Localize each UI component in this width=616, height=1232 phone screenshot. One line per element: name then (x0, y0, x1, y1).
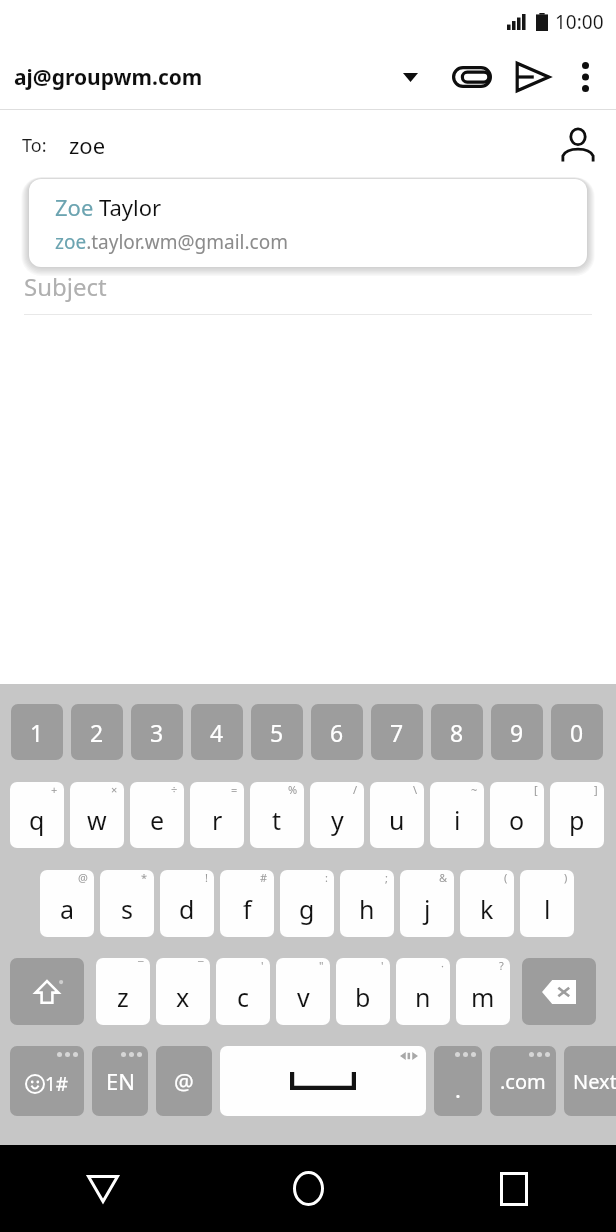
button[interactable]: : (280, 870, 334, 937)
button[interactable]: \ (370, 782, 424, 848)
staticText: * (141, 870, 148, 885)
staticText: ( (504, 870, 508, 885)
button[interactable]: & (400, 870, 454, 937)
button[interactable]: Zoe Taylor (29, 179, 587, 267)
staticText: x (176, 980, 190, 1014)
button[interactable]: * (100, 870, 154, 937)
staticText: @ (78, 870, 88, 885)
staticText: ~ (471, 782, 478, 797)
button[interactable]: / (310, 782, 364, 848)
button[interactable]: ' (336, 958, 390, 1025)
button[interactable]: = (190, 782, 244, 848)
button[interactable]: Back (0, 1145, 206, 1232)
button[interactable]: . (434, 1046, 482, 1116)
staticText: 9 (510, 717, 524, 748)
button[interactable]: Space (220, 1046, 426, 1116)
staticText: ¯ (198, 958, 204, 973)
button[interactable]: ÷ (130, 782, 184, 848)
button[interactable]: ! (160, 870, 214, 937)
staticText: 5 (270, 717, 284, 748)
button[interactable]: · (396, 958, 450, 1025)
button[interactable]: Shift (10, 958, 84, 1025)
button[interactable]: [ (490, 782, 544, 848)
button[interactable]: 2 (71, 704, 123, 760)
button[interactable]: 3 (131, 704, 183, 760)
staticText: Subject (24, 270, 107, 303)
staticText: : (325, 870, 328, 885)
button[interactable]: Attach (448, 53, 496, 101)
button[interactable]: Send (508, 52, 558, 102)
button[interactable]: ' (216, 958, 270, 1025)
button[interactable]: % (250, 782, 304, 848)
button[interactable]: ? (456, 958, 510, 1025)
button[interactable]: 9 (491, 704, 543, 760)
staticText: d (179, 892, 195, 926)
staticText: 0 (570, 717, 584, 748)
staticText: p (569, 803, 585, 837)
button[interactable]: Choose sender account (388, 55, 432, 99)
button[interactable]: 4 (191, 704, 243, 760)
button[interactable]: Symbols (10, 1046, 84, 1116)
staticText: q (29, 803, 45, 837)
staticText: r (212, 803, 223, 837)
button[interactable]: .com (490, 1046, 556, 1116)
staticText: m (471, 980, 495, 1014)
button[interactable]: 8 (431, 704, 483, 760)
button[interactable]: + (10, 782, 64, 848)
staticText: 4 (210, 717, 224, 748)
staticText: ] (594, 782, 598, 797)
staticText: Next (573, 1068, 616, 1095)
staticText: EN (106, 1066, 135, 1096)
staticText: # (260, 870, 268, 885)
staticText: n (415, 980, 431, 1014)
staticText: l (544, 892, 551, 926)
button[interactable]: ( (460, 870, 514, 937)
staticText: + (51, 782, 58, 797)
button[interactable]: Next (564, 1046, 616, 1116)
button[interactable]: 1 (11, 704, 63, 760)
button[interactable]: @ (156, 1046, 212, 1116)
button[interactable]: # (220, 870, 274, 937)
button[interactable]: ~ (430, 782, 484, 848)
button[interactable]: ¯ (96, 958, 150, 1025)
staticText: w (87, 803, 107, 837)
button[interactable]: 5 (251, 704, 303, 760)
button[interactable]: Recent apps (411, 1145, 616, 1232)
button[interactable]: ; (340, 870, 394, 937)
staticText: 6 (330, 717, 344, 748)
staticText: / (353, 782, 358, 797)
staticText: Zoe Taylor (55, 192, 162, 222)
staticText: ÷ (171, 782, 178, 797)
staticText: 1 (30, 717, 44, 748)
button[interactable]: ¯ (156, 958, 210, 1025)
button[interactable]: 6 (311, 704, 363, 760)
staticText: a (60, 892, 75, 926)
staticText: · (441, 958, 444, 973)
staticText: ' (261, 958, 264, 973)
button[interactable]: × (70, 782, 124, 848)
staticText: e (150, 803, 165, 837)
staticText: % (288, 782, 298, 797)
staticText: y (331, 803, 344, 837)
button[interactable]: @ (40, 870, 94, 937)
staticText: b (355, 980, 371, 1014)
button[interactable]: Add from contacts (554, 121, 602, 169)
staticText: k (480, 892, 494, 926)
staticText: .com (500, 1068, 546, 1095)
staticText: c (237, 980, 250, 1014)
staticText: j (424, 892, 431, 926)
staticText: g (299, 892, 315, 926)
button[interactable]: ] (550, 782, 604, 848)
staticText: ' (381, 958, 384, 973)
button[interactable]: 0 (551, 704, 603, 760)
button[interactable]: " (276, 958, 330, 1025)
button[interactable]: ) (520, 870, 574, 937)
button[interactable]: Home (206, 1145, 411, 1232)
staticText: 1# (45, 1071, 69, 1097)
staticText: ) (564, 870, 568, 885)
button[interactable]: 7 (371, 704, 423, 760)
button[interactable]: More options (562, 54, 608, 100)
button[interactable]: Backspace (522, 958, 596, 1025)
button[interactable]: EN (92, 1046, 148, 1116)
staticText: v (297, 980, 310, 1014)
